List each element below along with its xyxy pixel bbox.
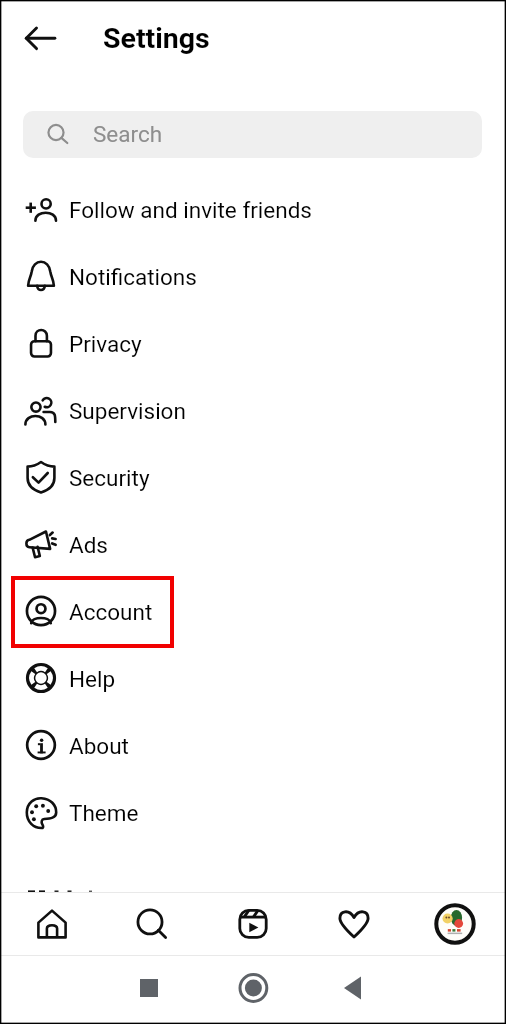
button[interactable]: Notifications [0, 242, 506, 309]
staticText: Account [69, 599, 153, 625]
staticText: Privacy [69, 331, 142, 357]
staticText: Search [93, 121, 163, 147]
staticText: Supervision [69, 398, 186, 424]
button[interactable]: Account [0, 577, 506, 644]
button[interactable]: About [0, 711, 506, 778]
staticText: Theme [69, 800, 139, 826]
button[interactable]: Help [0, 644, 506, 711]
button[interactable]: Privacy [0, 309, 506, 376]
staticText: Follow and invite friends [69, 197, 312, 223]
button[interactable]: Ads [0, 510, 506, 577]
staticText: Settings [103, 22, 210, 55]
staticText: About [69, 733, 129, 759]
button[interactable]: Profile [405, 893, 505, 955]
button[interactable]: Back [19, 16, 62, 59]
button[interactable]: Home [2, 893, 102, 955]
button[interactable]: Search [100, 893, 200, 955]
button[interactable]: Supervision [0, 376, 506, 443]
button[interactable]: Security [0, 443, 506, 510]
button[interactable]: Activity [304, 893, 404, 955]
button[interactable]: Theme [0, 778, 506, 845]
staticText: Ads [69, 532, 108, 558]
button[interactable]: Reels [203, 893, 303, 955]
button[interactable]: Search [23, 111, 482, 158]
button[interactable]: Follow and invite friends [0, 175, 506, 242]
staticText: Help [69, 666, 116, 692]
staticText: Security [69, 465, 150, 491]
staticText: Notifications [69, 264, 197, 290]
